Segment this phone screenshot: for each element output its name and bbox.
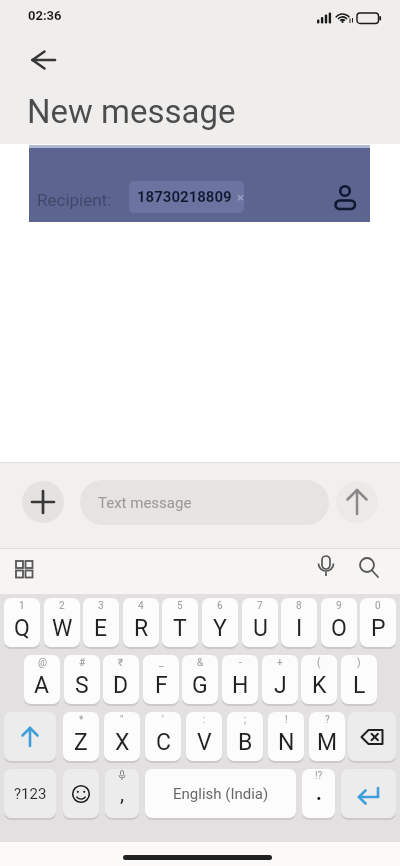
button[interactable]: 18730218809 <box>129 181 244 213</box>
button[interactable] <box>44 598 80 647</box>
staticText: Y <box>213 615 227 642</box>
staticText: 4 <box>138 600 144 612</box>
staticText: & <box>197 657 204 669</box>
staticText: 2 <box>59 600 65 612</box>
button[interactable] <box>341 769 396 818</box>
button[interactable] <box>10 554 42 586</box>
staticText: C <box>156 729 171 756</box>
staticText: _ <box>159 657 164 669</box>
button[interactable] <box>24 655 60 704</box>
button[interactable] <box>105 769 139 818</box>
button[interactable]: Recipient: <box>29 145 370 222</box>
staticText: H <box>232 672 249 699</box>
button[interactable] <box>202 598 238 647</box>
button[interactable] <box>186 712 222 761</box>
staticText: ) <box>357 657 361 669</box>
staticText: L <box>353 672 366 699</box>
button[interactable] <box>145 712 181 761</box>
staticText: 8 <box>296 600 302 612</box>
staticText: B <box>238 729 253 756</box>
staticText: M <box>317 729 338 756</box>
button[interactable] <box>83 598 119 647</box>
staticText: E <box>94 615 108 642</box>
staticText: R <box>134 615 149 642</box>
button[interactable] <box>341 655 377 704</box>
button[interactable] <box>162 598 198 647</box>
staticText: ( <box>317 657 321 669</box>
staticText: : <box>203 714 206 726</box>
staticText: 02:36 <box>28 8 62 23</box>
staticText: # <box>79 657 86 669</box>
staticText: + <box>277 657 283 669</box>
button[interactable] <box>182 655 218 704</box>
button[interactable] <box>4 712 56 761</box>
staticText: ₹ <box>118 657 124 669</box>
button[interactable] <box>227 712 263 761</box>
button[interactable]: English (India) <box>145 769 296 818</box>
button[interactable] <box>301 655 337 704</box>
button[interactable] <box>22 481 64 523</box>
staticText: , <box>120 782 125 807</box>
staticText: - <box>239 657 242 669</box>
staticText: ' <box>162 714 164 726</box>
staticText: 1 <box>19 600 25 612</box>
staticText: Text message <box>98 494 192 512</box>
staticText: 0 <box>375 600 381 612</box>
staticText: F <box>155 672 168 699</box>
button[interactable] <box>360 598 396 647</box>
button[interactable] <box>242 598 278 647</box>
staticText: D <box>113 672 129 699</box>
staticText: New message <box>27 92 236 131</box>
staticText: @ <box>38 657 47 669</box>
button[interactable]: Text message <box>80 480 329 525</box>
staticText: S <box>75 672 89 699</box>
button[interactable] <box>4 598 40 647</box>
button[interactable] <box>312 552 340 586</box>
button[interactable] <box>268 712 304 761</box>
staticText: × <box>237 190 244 205</box>
button[interactable] <box>63 769 99 818</box>
staticText: I <box>296 615 303 642</box>
button[interactable] <box>348 712 396 761</box>
button[interactable] <box>262 655 298 704</box>
button[interactable] <box>104 712 140 761</box>
button[interactable] <box>64 655 100 704</box>
button[interactable] <box>309 712 345 761</box>
staticText: " <box>120 714 124 726</box>
staticText: U <box>253 615 268 642</box>
staticText: * <box>79 714 84 726</box>
staticText: G <box>192 672 208 699</box>
staticText: . <box>316 781 322 804</box>
staticText: J <box>274 672 287 699</box>
staticText: V <box>197 729 212 756</box>
button[interactable] <box>103 655 139 704</box>
staticText: A <box>34 672 50 699</box>
staticText: 9 <box>336 600 342 612</box>
staticText: O <box>331 615 347 642</box>
staticText: 5 <box>177 600 183 612</box>
button[interactable] <box>321 598 357 647</box>
button[interactable] <box>302 769 335 818</box>
button[interactable] <box>336 481 378 523</box>
staticText: N <box>278 729 295 756</box>
staticText: ? <box>325 714 330 726</box>
staticText: X <box>115 729 130 756</box>
staticText: 3 <box>98 600 104 612</box>
button[interactable] <box>332 183 360 213</box>
button[interactable] <box>354 552 386 586</box>
staticText: P <box>371 615 386 642</box>
button[interactable] <box>222 655 258 704</box>
staticText: English (India) <box>173 785 269 803</box>
button[interactable] <box>143 655 179 704</box>
staticText: K <box>312 672 327 699</box>
button[interactable]: ?123 <box>4 769 56 818</box>
button[interactable] <box>18 44 66 78</box>
staticText: ; <box>244 714 247 726</box>
staticText: !? <box>315 770 323 782</box>
button[interactable] <box>123 598 159 647</box>
button[interactable] <box>63 712 99 761</box>
staticText: 7 <box>257 600 263 612</box>
staticText: Q <box>14 615 30 642</box>
button[interactable] <box>281 598 317 647</box>
staticText: Z <box>74 729 88 756</box>
